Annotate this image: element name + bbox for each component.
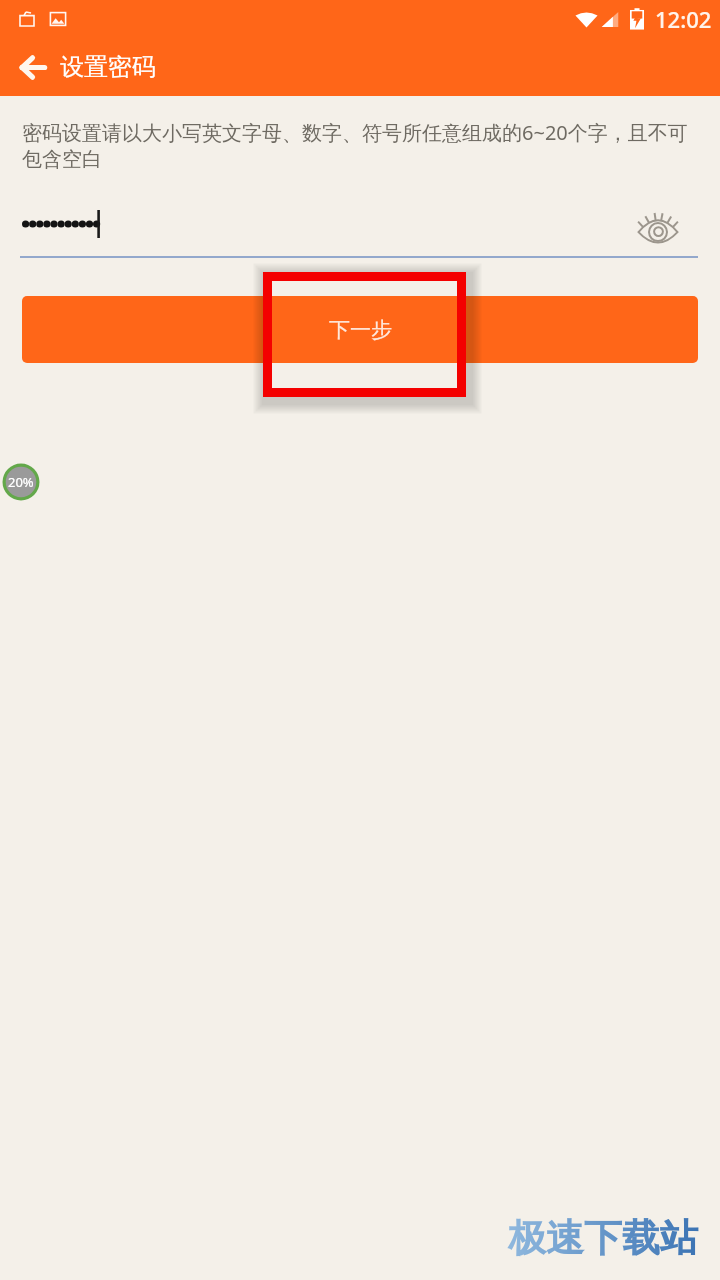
staticText: 密码设置请以大小写英文字母、数字、符号所任意组成的6~20个字，且不可 包含空白	[22, 119, 712, 172]
staticText: 设置密码	[60, 52, 156, 82]
staticText: 极速下载站	[508, 1214, 698, 1262]
button[interactable]: Back	[10, 45, 54, 89]
staticText: 下一步	[329, 317, 392, 343]
button[interactable]: 下一步	[22, 296, 698, 363]
staticText: 20%	[8, 473, 34, 491]
button[interactable]: Show password	[634, 204, 682, 252]
staticText: 12:02	[655, 4, 712, 34]
